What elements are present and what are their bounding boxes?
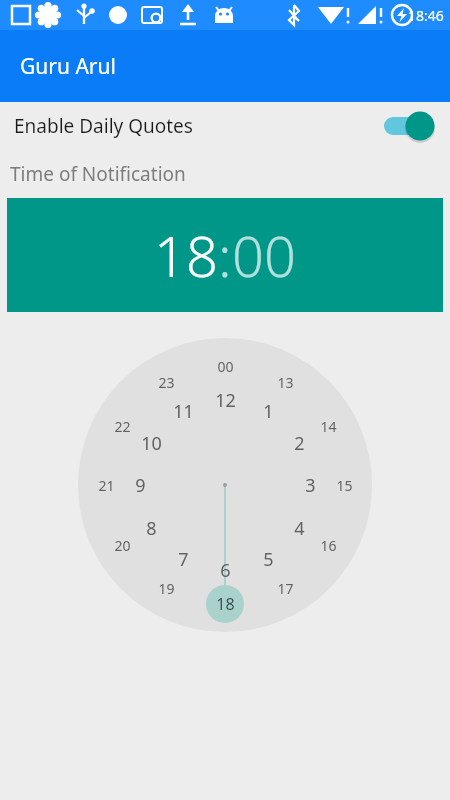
button[interactable]: 18: [154, 217, 218, 293]
staticText: 16: [320, 536, 337, 555]
button[interactable]: 11: [165, 393, 201, 429]
staticText: 21: [98, 476, 115, 495]
staticText: 6: [220, 558, 231, 583]
button[interactable]: 15: [326, 467, 362, 503]
staticText: 5: [263, 547, 274, 572]
button[interactable]: 21: [88, 467, 124, 503]
staticText: Time of Notification: [10, 161, 186, 187]
button[interactable]: Enable Daily Quotes: [0, 102, 450, 150]
staticText: Enable Daily Quotes: [14, 113, 193, 139]
staticText: 23: [158, 373, 175, 392]
staticText: 4: [294, 516, 305, 541]
button[interactable]: 7: [165, 541, 201, 577]
staticText: 9: [135, 473, 146, 498]
staticText: 11: [173, 399, 194, 424]
staticText: 00: [217, 357, 234, 376]
staticText: 12: [215, 388, 236, 413]
staticText: 13: [277, 373, 294, 392]
button[interactable]: 14: [310, 408, 346, 444]
staticText: 15: [336, 476, 353, 495]
staticText: 7: [178, 547, 189, 572]
button[interactable]: Enable Daily Quotes toggle: [380, 109, 436, 143]
button[interactable]: 12: [207, 382, 243, 418]
staticText: 14: [320, 417, 337, 436]
button[interactable]: 2: [281, 425, 317, 461]
button[interactable]: 19: [148, 570, 184, 606]
staticText: 17: [277, 579, 294, 598]
button[interactable]: 22: [104, 408, 140, 444]
staticText: 8: [146, 516, 157, 541]
staticText: 22: [114, 417, 131, 436]
staticText: :: [218, 217, 232, 293]
staticText: 10: [141, 431, 162, 456]
button[interactable]: 4: [281, 510, 317, 546]
staticText: Guru Arul: [20, 52, 116, 81]
button[interactable]: 16: [310, 527, 346, 563]
button[interactable]: 18: [207, 586, 243, 622]
button[interactable]: 13: [267, 364, 303, 400]
staticText: 18: [216, 593, 235, 615]
button[interactable]: 23: [148, 364, 184, 400]
staticText: 20: [114, 536, 131, 555]
button[interactable]: 00: [232, 217, 296, 293]
staticText: 1: [263, 399, 274, 424]
button[interactable]: 17: [267, 570, 303, 606]
staticText: 19: [158, 579, 175, 598]
button[interactable]: 5: [250, 541, 286, 577]
staticText: 2: [294, 431, 305, 456]
button[interactable]: 6: [207, 552, 243, 588]
button[interactable]: 8: [133, 510, 169, 546]
button[interactable]: 00: [207, 348, 243, 384]
staticText: 3: [305, 473, 316, 498]
button[interactable]: 20: [104, 527, 140, 563]
staticText: 18:46: [408, 6, 444, 25]
button[interactable]: 10: [133, 425, 169, 461]
button[interactable]: 1: [250, 393, 286, 429]
button[interactable]: 3: [292, 467, 328, 503]
button[interactable]: 9: [122, 467, 158, 503]
